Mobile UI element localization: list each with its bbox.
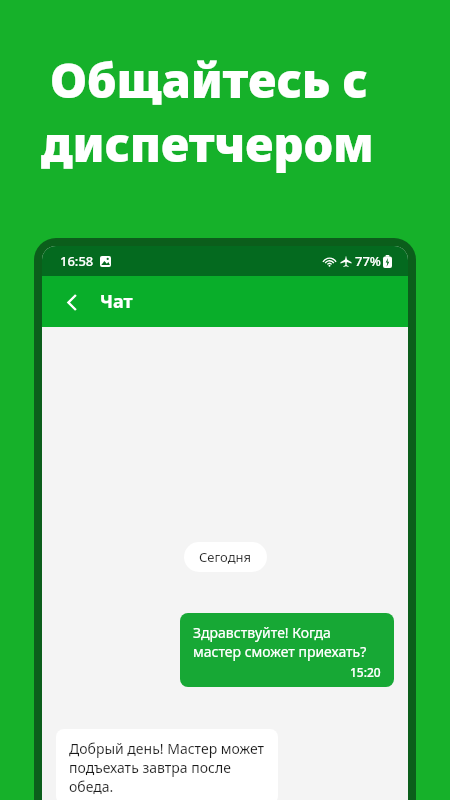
- button[interactable]: Назад: [52, 282, 92, 322]
- staticText: Общайтесь с: [50, 48, 368, 112]
- button[interactable]: Добрый день! Мастер может подъехать завт…: [56, 729, 278, 800]
- staticText: Сегодня: [199, 548, 252, 566]
- button[interactable]: Сегодня: [184, 542, 267, 572]
- button[interactable]: Здравствуйте! Когда мастер сможет приеха…: [180, 613, 394, 687]
- staticText: диспетчером: [41, 112, 374, 176]
- staticText: Добрый день! Мастер может подъехать завт…: [69, 739, 265, 796]
- staticText: 77%: [355, 252, 381, 270]
- staticText: 15:20: [350, 664, 381, 680]
- staticText: Чат: [100, 289, 133, 314]
- staticText: Здравствуйте! Когда мастер сможет приеха…: [193, 623, 381, 661]
- staticText: 16:58: [60, 252, 94, 270]
